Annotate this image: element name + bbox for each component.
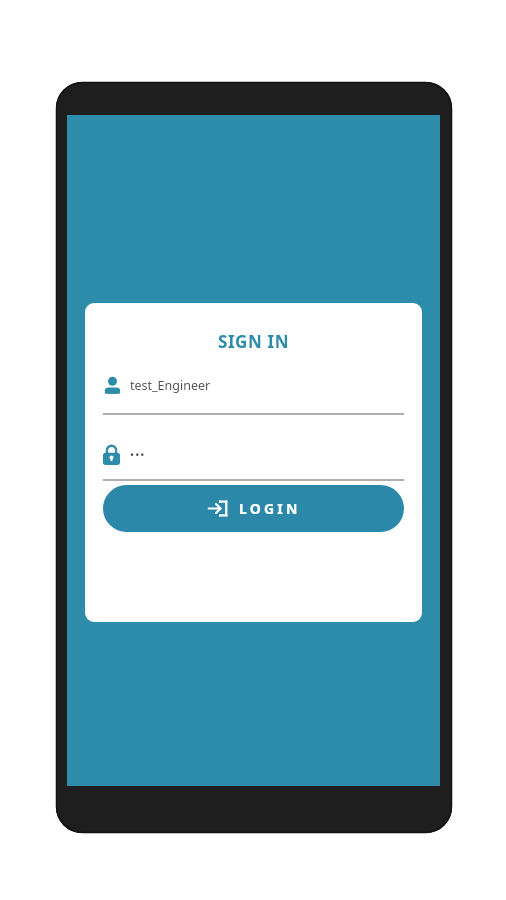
other: Password (103, 444, 120, 465)
button[interactable]: Login (103, 485, 404, 532)
staticText: LOGIN (239, 499, 301, 518)
other: Login (207, 498, 228, 519)
other: User name (103, 376, 122, 395)
staticText: test_Engineer (130, 377, 211, 394)
button[interactable]: Password (103, 439, 404, 481)
staticText: ••• (130, 447, 146, 462)
button[interactable]: User name (103, 370, 404, 415)
staticText: SIGN IN (85, 330, 422, 353)
